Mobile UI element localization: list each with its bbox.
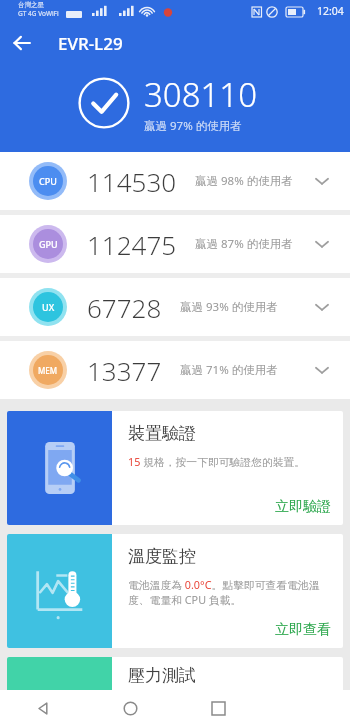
staticText: 贏過 71% 的使用者 (180, 362, 278, 378)
staticText: 15 規格，按一下即可驗證您的裝置。 (128, 454, 306, 469)
staticText: UX (42, 301, 55, 313)
button[interactable]: Back (0, 22, 44, 64)
button[interactable]: 立即查看 (275, 621, 331, 648)
staticText: 贏過 97% 的使用者 (144, 118, 242, 134)
staticText: 立即查看 (275, 621, 331, 639)
button[interactable]: Home (87, 690, 174, 727)
staticText: 12:04 (317, 4, 344, 18)
button[interactable]: Expand UX (302, 287, 342, 327)
button[interactable]: Expand GPU (302, 224, 342, 264)
staticText: 308110 (144, 72, 258, 117)
staticText: 贏過 87% 的使用者 (195, 236, 293, 252)
staticText: GPU (39, 238, 58, 250)
staticText: 67728 (87, 290, 162, 325)
staticText: GT 4G VoWiFi (18, 9, 59, 18)
button[interactable]: 立即驗證 (275, 498, 331, 525)
staticText: 112475 (87, 227, 177, 262)
staticText: 立即驗證 (275, 498, 331, 516)
button[interactable]: Expand MEM (302, 350, 342, 390)
button[interactable]: CPU (0, 152, 350, 210)
staticText: 贏過 93% 的使用者 (180, 299, 278, 315)
staticText: 114530 (87, 164, 177, 199)
button[interactable]: GPU (0, 215, 350, 273)
staticText: CPU (39, 175, 57, 187)
button[interactable]: 壓力測試 (7, 657, 343, 703)
staticText: 贏過 98% 的使用者 (195, 173, 293, 189)
button[interactable]: Recents (174, 690, 262, 727)
staticText: 溫度監控 (128, 546, 196, 567)
staticText: 裝置驗證 (128, 423, 196, 444)
staticText: EVR-L29 (58, 32, 123, 55)
staticText: 壓力測試 (128, 665, 196, 686)
staticText: 台灣之星 (18, 1, 44, 9)
button[interactable]: MEM (0, 341, 350, 399)
staticText: 13377 (87, 353, 162, 388)
button[interactable]: Back (0, 690, 87, 727)
staticText: 電池溫度為 0.0°C。點擊即可查看電池溫度、電量和 CPU 負載。 (128, 577, 331, 607)
button[interactable]: 裝置驗證 (7, 411, 343, 525)
button[interactable]: Expand CPU (302, 161, 342, 201)
button[interactable]: UX (0, 278, 350, 336)
staticText: MEM (38, 365, 58, 376)
button[interactable]: 溫度監控 (7, 534, 343, 648)
